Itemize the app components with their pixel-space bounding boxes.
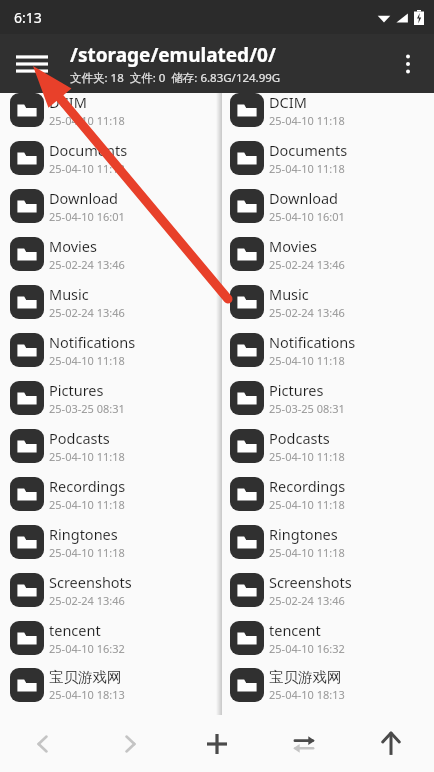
staticText: 25-02-24 13:46 bbox=[269, 257, 345, 272]
staticText: /storage/emulated/0/ bbox=[70, 42, 276, 68]
button[interactable]: tencent bbox=[0, 614, 216, 662]
button[interactable]: Recordings bbox=[224, 470, 434, 518]
button[interactable]: Notifications bbox=[0, 326, 216, 374]
button[interactable]: Movies bbox=[0, 230, 216, 278]
button[interactable]: New bbox=[173, 715, 260, 772]
button[interactable]: DCIM bbox=[0, 86, 216, 134]
button[interactable]: Music bbox=[224, 278, 434, 326]
staticText: 宝贝游戏网 bbox=[49, 668, 122, 686]
staticText: Podcasts bbox=[49, 428, 110, 448]
staticText: 25-04-10 11:18 bbox=[269, 353, 345, 368]
staticText: 25-04-10 11:18 bbox=[49, 497, 125, 512]
staticText: Movies bbox=[269, 236, 317, 256]
button[interactable]: Pictures bbox=[224, 374, 434, 422]
staticText: DCIM bbox=[49, 92, 87, 112]
staticText: Music bbox=[49, 284, 89, 304]
staticText: Movies bbox=[49, 236, 97, 256]
staticText: 25-04-10 11:18 bbox=[269, 161, 345, 176]
button[interactable]: Screenshots bbox=[0, 566, 216, 614]
button[interactable]: Ringtones bbox=[0, 518, 216, 566]
button[interactable]: Documents bbox=[224, 134, 434, 182]
staticText: Screenshots bbox=[49, 572, 132, 592]
button[interactable]: Notifications bbox=[224, 326, 434, 374]
button[interactable]: Ringtones bbox=[224, 518, 434, 566]
staticText: 25-02-24 13:46 bbox=[49, 257, 125, 272]
staticText: Notifications bbox=[269, 332, 356, 352]
button[interactable]: 宝贝游戏网 bbox=[224, 662, 434, 708]
staticText: 25-04-10 11:18 bbox=[49, 449, 125, 464]
staticText: Podcasts bbox=[269, 428, 330, 448]
button[interactable]: Back bbox=[0, 715, 86, 772]
button[interactable]: Recordings bbox=[0, 470, 216, 518]
staticText: Documents bbox=[269, 140, 348, 160]
staticText: 25-04-10 18:13 bbox=[49, 687, 125, 702]
button[interactable]: Forward bbox=[86, 715, 173, 772]
button[interactable]: Download bbox=[224, 182, 434, 230]
button[interactable]: Switch panes bbox=[260, 715, 347, 772]
button[interactable]: Download bbox=[0, 182, 216, 230]
staticText: Documents bbox=[49, 140, 128, 160]
button[interactable]: More options bbox=[386, 42, 430, 86]
staticText: 宝贝游戏网 bbox=[269, 668, 342, 686]
staticText: 25-04-10 11:18 bbox=[269, 113, 345, 128]
staticText: 25-04-10 16:32 bbox=[269, 641, 345, 656]
staticText: 25-03-25 08:31 bbox=[269, 401, 345, 416]
staticText: Download bbox=[49, 188, 118, 208]
staticText: Pictures bbox=[49, 380, 104, 400]
staticText: 25-04-10 11:18 bbox=[269, 497, 345, 512]
staticText: Pictures bbox=[269, 380, 324, 400]
staticText: 25-03-25 08:31 bbox=[49, 401, 125, 416]
staticText: 25-04-10 11:18 bbox=[269, 545, 345, 560]
staticText: 25-02-24 13:46 bbox=[269, 593, 345, 608]
staticText: 25-04-10 11:18 bbox=[49, 545, 125, 560]
staticText: Screenshots bbox=[269, 572, 352, 592]
staticText: Music bbox=[269, 284, 309, 304]
staticText: Download bbox=[269, 188, 338, 208]
staticText: 25-04-10 18:13 bbox=[269, 687, 345, 702]
button[interactable]: Up bbox=[347, 715, 434, 772]
button[interactable]: Podcasts bbox=[0, 422, 216, 470]
staticText: 25-04-10 11:18 bbox=[49, 161, 125, 176]
staticText: 25-04-10 16:01 bbox=[49, 209, 125, 224]
staticText: Ringtones bbox=[269, 524, 338, 544]
staticText: tencent bbox=[269, 620, 321, 640]
staticText: tencent bbox=[49, 620, 101, 640]
button[interactable]: Pictures bbox=[0, 374, 216, 422]
staticText: Recordings bbox=[49, 476, 126, 496]
button[interactable]: tencent bbox=[224, 614, 434, 662]
button[interactable]: Open navigation drawer bbox=[8, 40, 56, 88]
staticText: 25-04-10 11:18 bbox=[49, 353, 125, 368]
staticText: 25-02-24 13:46 bbox=[269, 305, 345, 320]
staticText: 25-02-24 13:46 bbox=[49, 305, 125, 320]
staticText: 25-04-10 16:01 bbox=[269, 209, 345, 224]
staticText: 25-04-10 16:32 bbox=[49, 641, 125, 656]
staticText: DCIM bbox=[269, 92, 307, 112]
staticText: 25-02-24 13:46 bbox=[49, 593, 125, 608]
staticText: 文件夹: 18 文件: 0 储存: 6.83G/124.99G bbox=[70, 70, 281, 86]
button[interactable]: Screenshots bbox=[224, 566, 434, 614]
button[interactable]: Documents bbox=[0, 134, 216, 182]
button[interactable]: Music bbox=[0, 278, 216, 326]
staticText: Ringtones bbox=[49, 524, 118, 544]
button[interactable]: Movies bbox=[224, 230, 434, 278]
button[interactable]: Podcasts bbox=[224, 422, 434, 470]
staticText: 6:13 bbox=[14, 8, 42, 27]
staticText: 25-04-10 11:18 bbox=[269, 449, 345, 464]
staticText: Recordings bbox=[269, 476, 346, 496]
button[interactable]: DCIM bbox=[224, 86, 434, 134]
staticText: 25-04-10 11:18 bbox=[49, 113, 125, 128]
staticText: Notifications bbox=[49, 332, 136, 352]
button[interactable]: 宝贝游戏网 bbox=[0, 662, 216, 708]
